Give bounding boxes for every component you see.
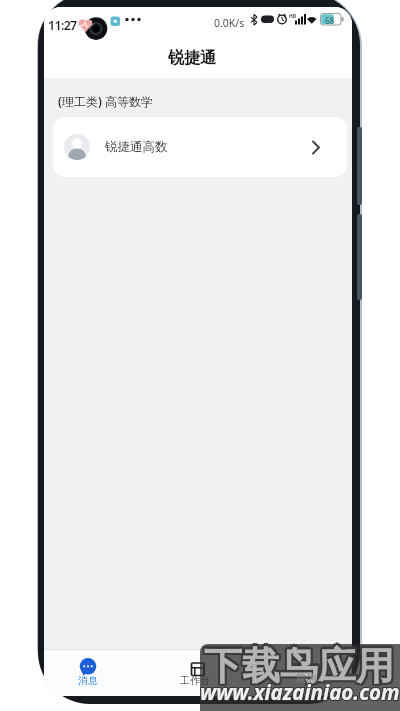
staticText: www.xiazainiao.com: [199, 678, 399, 706]
staticText: 下载鸟应用: [206, 642, 396, 690]
staticText: (理工类) 高等数学: [58, 93, 153, 109]
staticText: 工作台: [180, 674, 210, 687]
staticText: 我的: [296, 672, 316, 685]
staticText: www.xiazainiao.com: [201, 678, 400, 706]
staticText: 锐捷通高数: [105, 139, 168, 155]
staticText: www.xiazainiao.com: [199, 679, 399, 707]
button[interactable]: 消息: [57, 652, 119, 694]
staticText: www.xiazainiao.com: [201, 679, 400, 707]
staticText: 锐捷通: [168, 48, 216, 68]
button[interactable]: 工作台: [164, 652, 226, 694]
staticText: 下载鸟应用: [202, 644, 392, 692]
staticText: www.xiazainiao.com: [200, 678, 400, 706]
staticText: 11:27: [48, 17, 77, 34]
staticText: www.xiazainiao.com: [199, 677, 399, 705]
staticText: HD: [289, 13, 297, 20]
staticText: 下载鸟应用: [206, 644, 396, 692]
staticText: 下载鸟应用: [204, 644, 394, 692]
staticText: www.xiazainiao.com: [201, 677, 400, 705]
staticText: www.xiazainiao.com: [200, 677, 400, 705]
staticText: 下载鸟应用: [204, 639, 394, 687]
staticText: 下载鸟应用: [204, 642, 394, 690]
staticText: 下载鸟应用: [206, 640, 396, 688]
staticText: 下载鸟应用: [202, 642, 392, 690]
staticText: www.xiazainiao.com: [200, 679, 400, 707]
staticText: 0.0K/s: [214, 16, 245, 30]
staticText: 下载鸟应用: [202, 640, 392, 688]
button[interactable]: [270, 652, 332, 694]
staticText: 消息: [78, 674, 98, 687]
staticText: 68: [325, 15, 335, 26]
button[interactable]: 锐捷通高数: [53, 117, 347, 177]
